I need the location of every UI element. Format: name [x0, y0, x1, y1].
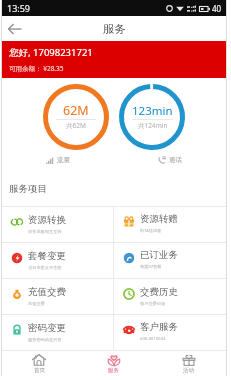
staticText: 当日变更次月生效	[28, 265, 62, 270]
button[interactable]: 套餐变更	[2, 243, 113, 278]
staticText: 语音流量相互互转	[28, 229, 62, 234]
button[interactable]: 服务	[76, 351, 151, 376]
staticText: 活动	[183, 367, 194, 374]
staticText: 密码变更	[28, 322, 66, 334]
button[interactable]: 首页	[2, 351, 76, 376]
button[interactable]: Back	[7, 21, 23, 37]
staticText: 资源转赠	[140, 213, 178, 225]
button[interactable]: 交费历史	[114, 279, 226, 314]
staticText: 123min	[132, 103, 173, 119]
staticText: 资源转换	[28, 214, 66, 226]
button[interactable]: 资源转赠	[114, 207, 226, 242]
staticText: 每期37套餐	[140, 264, 162, 270]
staticText: 13:59	[7, 2, 31, 14]
staticText: 已订业务	[140, 249, 178, 261]
staticText: 流量	[57, 156, 70, 164]
staticText: 服务密码动态外置	[28, 337, 62, 342]
button[interactable]: 充值交费	[2, 279, 113, 314]
staticText: 客户服务	[140, 321, 178, 333]
staticText: 服务	[103, 22, 126, 36]
staticText: 充值交费	[28, 286, 66, 298]
staticText: 共62M	[66, 121, 86, 130]
staticText: 400-8610044	[140, 336, 166, 342]
staticText: 通话	[169, 156, 182, 164]
button[interactable]: 活动	[151, 351, 226, 376]
button[interactable]: 资源转换	[2, 207, 113, 242]
staticText: 共124min	[138, 121, 168, 130]
staticText: 62M	[63, 102, 89, 119]
staticText: 充值交费	[28, 301, 45, 306]
staticText: 服务	[108, 367, 119, 374]
button[interactable]: 客户服务	[114, 315, 226, 350]
staticText: 您好, 17098231721	[9, 46, 93, 59]
button[interactable]: 密码变更	[2, 315, 113, 350]
staticText: 每月交费记录	[140, 301, 166, 306]
staticText: 可用余额： ¥28.35	[9, 64, 64, 73]
staticText: 套餐变更	[28, 250, 66, 262]
staticText: 服务项目	[9, 183, 47, 195]
staticText: 首页	[34, 367, 45, 374]
staticText: 给TA送流量	[140, 228, 162, 234]
button[interactable]: 已订业务	[114, 243, 226, 278]
staticText: 40	[212, 3, 222, 14]
staticText: 交费历史	[140, 286, 178, 298]
